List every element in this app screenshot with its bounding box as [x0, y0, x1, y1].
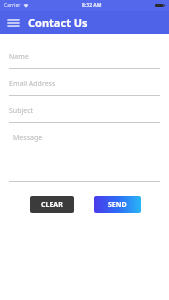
- staticText: CLEAR: [41, 200, 63, 210]
- staticText: Name: [9, 52, 29, 62]
- button[interactable]: Message: [9, 123, 160, 182]
- staticText: Email Address: [9, 79, 56, 89]
- staticText: Carrier: [4, 2, 21, 9]
- button[interactable]: Subject: [9, 96, 160, 123]
- staticText: Contact Us: [28, 15, 88, 30]
- staticText: SEND: [108, 200, 127, 210]
- staticText: Message: [13, 133, 43, 143]
- button[interactable]: Name: [9, 46, 160, 69]
- staticText: Subject: [9, 106, 34, 116]
- button[interactable]: SEND: [94, 196, 141, 213]
- button[interactable]: CLEAR: [30, 196, 74, 213]
- button[interactable]: Email Address: [9, 69, 160, 96]
- button[interactable]: Open navigation menu: [5, 15, 21, 31]
- staticText: 8:32 AM: [82, 2, 102, 9]
